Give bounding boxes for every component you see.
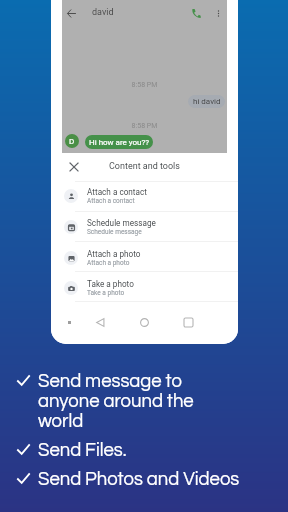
- staticText: david: [92, 7, 114, 18]
- button[interactable]: Home: [140, 318, 149, 327]
- button[interactable]: Call: [187, 4, 205, 22]
- button[interactable]: Attach a contact: [62, 181, 227, 211]
- button[interactable]: Close: [65, 158, 83, 176]
- staticText: Take a photo: [87, 279, 134, 289]
- staticText: hi david: [193, 97, 221, 106]
- button[interactable]: Take a photo: [62, 273, 227, 303]
- staticText: Send message to anyone around the world: [38, 372, 194, 431]
- button[interactable]: More options: [209, 4, 227, 22]
- staticText: Schedule message: [87, 218, 156, 228]
- staticText: Hi how are you??: [89, 138, 150, 147]
- staticText: Take a photo: [87, 289, 125, 297]
- staticText: D: [69, 137, 75, 146]
- staticText: Attach a photo: [87, 249, 141, 259]
- button[interactable]: Schedule message: [62, 212, 227, 242]
- staticText: Attach a contact: [87, 197, 135, 205]
- staticText: Attach a photo: [87, 259, 130, 267]
- button[interactable]: Back: [62, 4, 80, 22]
- staticText: 8:58 PM: [62, 122, 227, 130]
- staticText: Content and tools: [109, 161, 180, 172]
- staticText: Schedule message: [87, 228, 142, 236]
- staticText: Send Files.: [38, 441, 127, 460]
- staticText: Send Photos and Videos: [38, 470, 240, 489]
- staticText: Attach a contact: [87, 187, 147, 197]
- button[interactable]: Attach a photo: [62, 243, 227, 273]
- staticText: 8:58 PM: [62, 81, 227, 89]
- button[interactable]: Recents: [184, 318, 193, 327]
- button[interactable]: Back: [96, 318, 105, 327]
